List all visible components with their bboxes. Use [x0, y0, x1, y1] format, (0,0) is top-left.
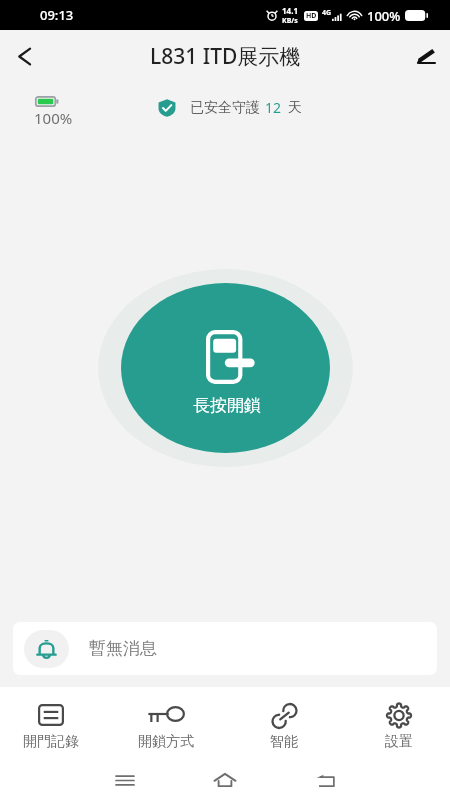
button[interactable]: 開鎖方式	[120, 687, 212, 751]
staticText: 智能	[270, 733, 298, 751]
staticText: L831 ITD展示機	[150, 42, 301, 71]
staticText: KB/s	[282, 16, 298, 26]
button[interactable]: Back	[2, 34, 46, 78]
staticText: 暫無消息	[89, 638, 157, 659]
staticText: 12	[265, 98, 282, 117]
staticText: 設置	[385, 733, 413, 751]
button[interactable]: 開門記錄	[5, 687, 97, 751]
button[interactable]: Long press to unlock	[121, 283, 330, 453]
staticText: 14.1	[282, 5, 298, 16]
staticText: 開鎖方式	[138, 733, 194, 751]
staticText: 09:13	[40, 6, 74, 24]
button[interactable]: Edit	[404, 34, 448, 78]
button[interactable]: 設置	[353, 687, 445, 751]
staticText: 開門記錄	[23, 733, 79, 751]
staticText: 100%	[367, 7, 401, 25]
staticText: 已安全守護	[190, 99, 260, 117]
staticText: 4G	[322, 8, 332, 18]
button[interactable]: Home	[207, 762, 243, 798]
staticText: 天	[288, 99, 302, 117]
staticText: 長按開鎖	[193, 395, 261, 416]
staticText: 100%	[34, 108, 73, 128]
staticText: HD	[306, 11, 317, 21]
button[interactable]: 暫無消息	[13, 622, 437, 675]
button[interactable]: Back	[307, 762, 343, 798]
button[interactable]: 智能	[238, 687, 330, 751]
button[interactable]: Recents	[107, 762, 143, 798]
